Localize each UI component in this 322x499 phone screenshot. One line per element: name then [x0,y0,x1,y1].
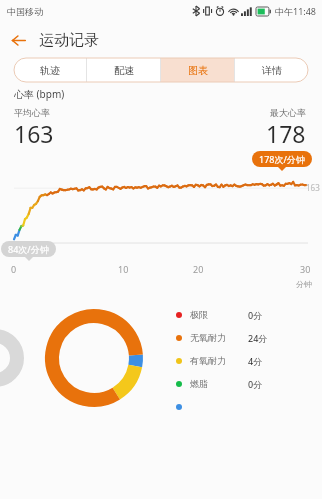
button[interactable]: 有氧耐力 [176,349,306,372]
staticText: 图表 [188,64,208,77]
staticText: 平均心率 [14,107,50,118]
staticText: 178次/分钟 [259,153,305,165]
button[interactable]: 无氧耐力 [176,326,306,349]
button[interactable]: 图表 [161,58,234,82]
staticText: 运动记录 [39,31,99,50]
staticText: 0分 [248,309,263,321]
staticText: 84次/分钟 [8,243,49,255]
button[interactable]: 极限 [176,303,306,326]
staticText: 30 [300,263,311,275]
staticText: 0 [11,263,17,275]
staticText: 有氧耐力 [190,355,248,366]
staticText: 燃脂 [190,378,248,389]
staticText: 极限 [190,309,248,320]
staticText: 分钟 [296,279,312,289]
staticText: 24分 [248,332,268,344]
staticText: 详情 [262,64,282,77]
staticText: 轨迹 [40,64,60,77]
staticText: 178 [266,118,306,149]
button[interactable]: 配速 [87,58,160,82]
staticText: 心率 (bpm) [14,87,65,101]
button[interactable]: Back [0,22,36,58]
button[interactable]: 燃脂 [176,372,306,395]
staticText: 无氧耐力 [190,332,248,343]
staticText: 10 [118,263,129,275]
staticText: 中国移动 [7,6,43,17]
staticText: 4分 [248,355,263,367]
staticText: 最大心率 [270,107,306,118]
staticText: 0分 [248,378,263,390]
staticText: 163 [14,118,54,149]
staticText: 中午11:48 [275,5,317,17]
button[interactable] [176,395,306,418]
staticText: 配速 [114,64,134,77]
staticText: 20 [193,263,204,275]
staticText: 163 [306,182,320,193]
button[interactable]: 轨迹 [14,58,86,82]
button[interactable]: 详情 [235,58,308,82]
